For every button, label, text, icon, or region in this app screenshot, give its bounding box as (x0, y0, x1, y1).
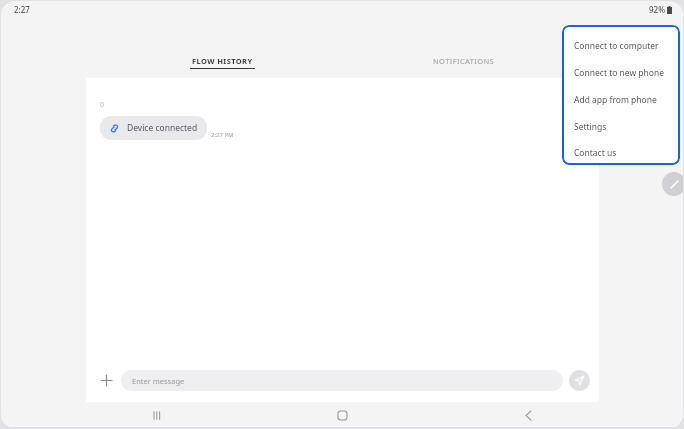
button[interactable]: Edit (662, 172, 683, 196)
staticText: 2:27 (14, 4, 30, 15)
button[interactable]: FLOW HISTORY (181, 56, 263, 78)
button[interactable]: Device connected (100, 116, 207, 140)
button[interactable]: Add attachment (95, 369, 117, 391)
button[interactable]: Connect to computer (562, 32, 680, 59)
button[interactable]: Send (569, 370, 590, 391)
staticText: Device connected (127, 122, 198, 134)
staticText: Connect to new phone (574, 67, 665, 79)
staticText: Connect to computer (574, 40, 659, 52)
button[interactable]: Contact us (562, 140, 680, 165)
button[interactable]: Connect to new phone (562, 59, 680, 86)
button[interactable]: Recent apps (127, 402, 187, 428)
button[interactable]: Add app from phone (562, 86, 680, 113)
staticText: Settings (574, 121, 607, 133)
staticText: NOTIFICATIONS (433, 56, 495, 66)
staticText: Enter message (132, 376, 185, 386)
staticText: Add app from phone (574, 94, 657, 106)
button[interactable]: Settings (562, 113, 680, 140)
button[interactable]: NOTIFICATIONS (421, 56, 507, 78)
staticText: FLOW HISTORY (192, 56, 253, 66)
button[interactable]: Back (498, 402, 558, 428)
staticText: 0 (100, 100, 105, 110)
staticText: 2:27 PM (211, 131, 234, 139)
button[interactable]: Home (312, 402, 372, 428)
staticText: 92% (649, 4, 665, 15)
staticText: Contact us (574, 147, 617, 159)
button[interactable]: Enter message (121, 370, 563, 391)
